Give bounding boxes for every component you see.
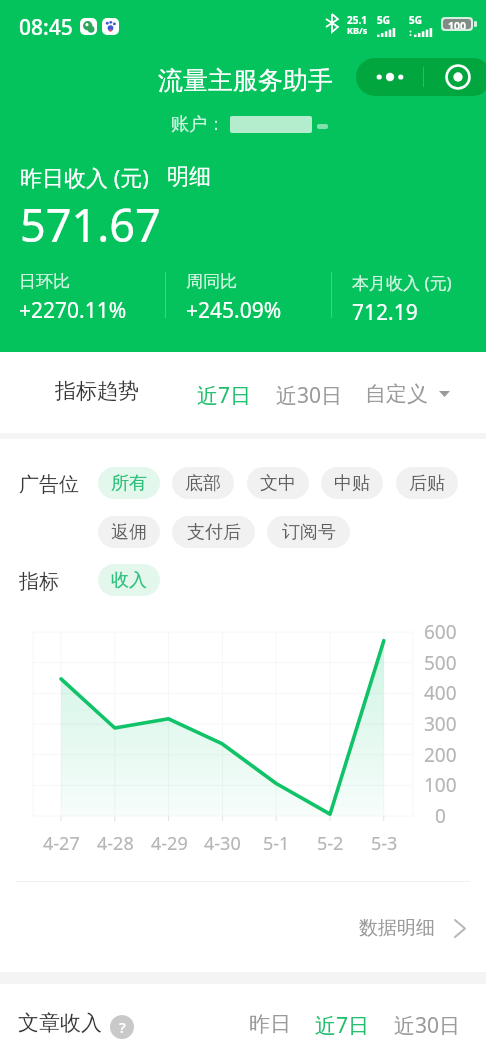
staticText: KB/s xyxy=(347,24,368,36)
staticText: 后贴 xyxy=(409,472,445,495)
staticText: 4-30 xyxy=(204,831,241,856)
staticText: 昨日收入 (元) xyxy=(20,162,149,192)
button[interactable]: 所有 xyxy=(98,467,160,499)
staticText: 500 xyxy=(424,650,457,676)
button[interactable]: 自定义 xyxy=(356,373,459,415)
staticText: 5G xyxy=(377,13,390,27)
staticText: +2270.11% xyxy=(19,296,127,325)
staticText: 712.19 xyxy=(352,298,418,327)
staticText: 5G xyxy=(409,13,422,27)
staticText: 昨日 xyxy=(249,1011,291,1037)
staticText: 4-27 xyxy=(43,831,80,856)
staticText: 近7日 xyxy=(197,381,252,410)
staticText: 400 xyxy=(424,680,457,706)
staticText: 自定义 xyxy=(365,381,428,407)
staticText: 中贴 xyxy=(334,472,370,495)
staticText: 近30日 xyxy=(276,381,343,410)
button[interactable]: 近30日 xyxy=(267,373,352,418)
staticText: 流量主服务助手 xyxy=(158,65,333,96)
staticText: 所有 xyxy=(111,472,147,495)
staticText: 5-3 xyxy=(371,831,398,856)
staticText: 4-29 xyxy=(151,831,188,856)
button[interactable]: 订阅号 xyxy=(267,516,350,548)
staticText: 本月收入 (元) xyxy=(352,271,452,294)
staticText: 文中 xyxy=(260,472,296,495)
button[interactable]: 数据明细 xyxy=(350,906,474,950)
staticText: 300 xyxy=(424,711,457,737)
staticText: 广告位 xyxy=(19,472,79,497)
button[interactable]: 文中 xyxy=(247,467,309,499)
staticText: 25.1 xyxy=(347,13,367,27)
staticText: 200 xyxy=(424,742,457,768)
button[interactable]: Help xyxy=(110,1015,134,1039)
staticText: 指标 xyxy=(19,569,59,594)
button[interactable]: 支付后 xyxy=(172,516,255,548)
button[interactable]: 收入 xyxy=(98,564,160,596)
staticText: 账户： xyxy=(171,113,225,136)
staticText: 收入 xyxy=(111,569,147,592)
staticText: 100 xyxy=(424,772,457,798)
staticText: 4-28 xyxy=(97,831,134,856)
button[interactable]: More xyxy=(356,58,423,96)
staticText: 5-2 xyxy=(317,831,344,856)
staticText: 返佣 xyxy=(111,521,147,544)
button[interactable]: Close xyxy=(424,58,486,96)
staticText: 5-1 xyxy=(263,831,290,856)
staticText: 近30日 xyxy=(394,1011,461,1040)
button[interactable]: 近30日 xyxy=(385,1003,470,1048)
staticText: 日环比 xyxy=(19,271,70,292)
staticText: 指标趋势 xyxy=(55,378,139,404)
button[interactable]: 后贴 xyxy=(396,467,458,499)
button[interactable]: 返佣 xyxy=(98,516,160,548)
staticText: 100 xyxy=(448,19,467,29)
staticText: 周同比 xyxy=(186,271,237,292)
staticText: 订阅号 xyxy=(282,521,336,544)
staticText: 支付后 xyxy=(187,521,241,544)
staticText: 数据明细 xyxy=(359,916,435,940)
button[interactable]: 近7日 xyxy=(306,1003,379,1048)
button[interactable]: 明细 xyxy=(167,163,211,191)
staticText: ? xyxy=(119,1017,126,1037)
staticText: 文章收入 xyxy=(18,1010,102,1036)
staticText: +245.09% xyxy=(186,296,282,325)
staticText: 571.67 xyxy=(20,194,161,255)
button[interactable]: 近7日 xyxy=(188,373,261,418)
staticText: 底部 xyxy=(185,472,221,495)
staticText: 08:45 xyxy=(19,13,73,42)
staticText: 近7日 xyxy=(315,1011,370,1040)
staticText: 600 xyxy=(424,619,457,645)
staticText: 0 xyxy=(435,803,446,829)
button[interactable]: 昨日 xyxy=(240,1003,300,1045)
button[interactable]: 底部 xyxy=(172,467,234,499)
button[interactable]: 中贴 xyxy=(321,467,383,499)
